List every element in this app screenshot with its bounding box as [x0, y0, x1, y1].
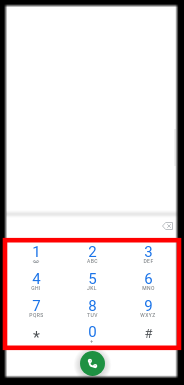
button[interactable]: Backspace — [156, 215, 178, 237]
button[interactable]: * — [10, 319, 62, 346]
button[interactable]: 5 — [66, 266, 118, 293]
staticText: DEF — [143, 258, 154, 264]
button[interactable]: 3 — [122, 239, 174, 266]
staticText: 0 — [88, 323, 97, 341]
staticText: 7 — [32, 297, 41, 315]
button[interactable]: 0 — [66, 319, 118, 346]
button[interactable]: 1 — [10, 239, 62, 266]
button[interactable]: # — [122, 319, 174, 346]
button[interactable]: 8 — [66, 293, 118, 320]
staticText: 8 — [88, 297, 97, 315]
staticText: PQRS — [29, 312, 44, 318]
button[interactable]: Call — [80, 351, 105, 376]
staticText: 2 — [88, 243, 97, 261]
button[interactable]: 6 — [122, 266, 174, 293]
staticText: MNO — [142, 285, 155, 291]
staticText: WXYZ — [140, 312, 156, 318]
button[interactable]: 2 — [66, 239, 118, 266]
staticText: + — [90, 338, 94, 344]
staticText: 1 — [32, 243, 41, 261]
staticText: 9 — [144, 297, 153, 315]
button[interactable]: 4 — [10, 266, 62, 293]
staticText: 6 — [144, 270, 153, 288]
button[interactable]: 9 — [122, 293, 174, 320]
staticText: GHI — [31, 285, 41, 291]
staticText: * — [33, 328, 40, 347]
staticText: JKL — [87, 285, 97, 291]
staticText: ABC — [87, 258, 98, 264]
staticText: TUV — [87, 312, 98, 318]
staticText: 5 — [88, 270, 97, 288]
staticText: # — [144, 326, 153, 341]
button[interactable]: 7 — [10, 293, 62, 320]
staticText: 3 — [144, 243, 153, 261]
staticText: 4 — [32, 270, 41, 288]
